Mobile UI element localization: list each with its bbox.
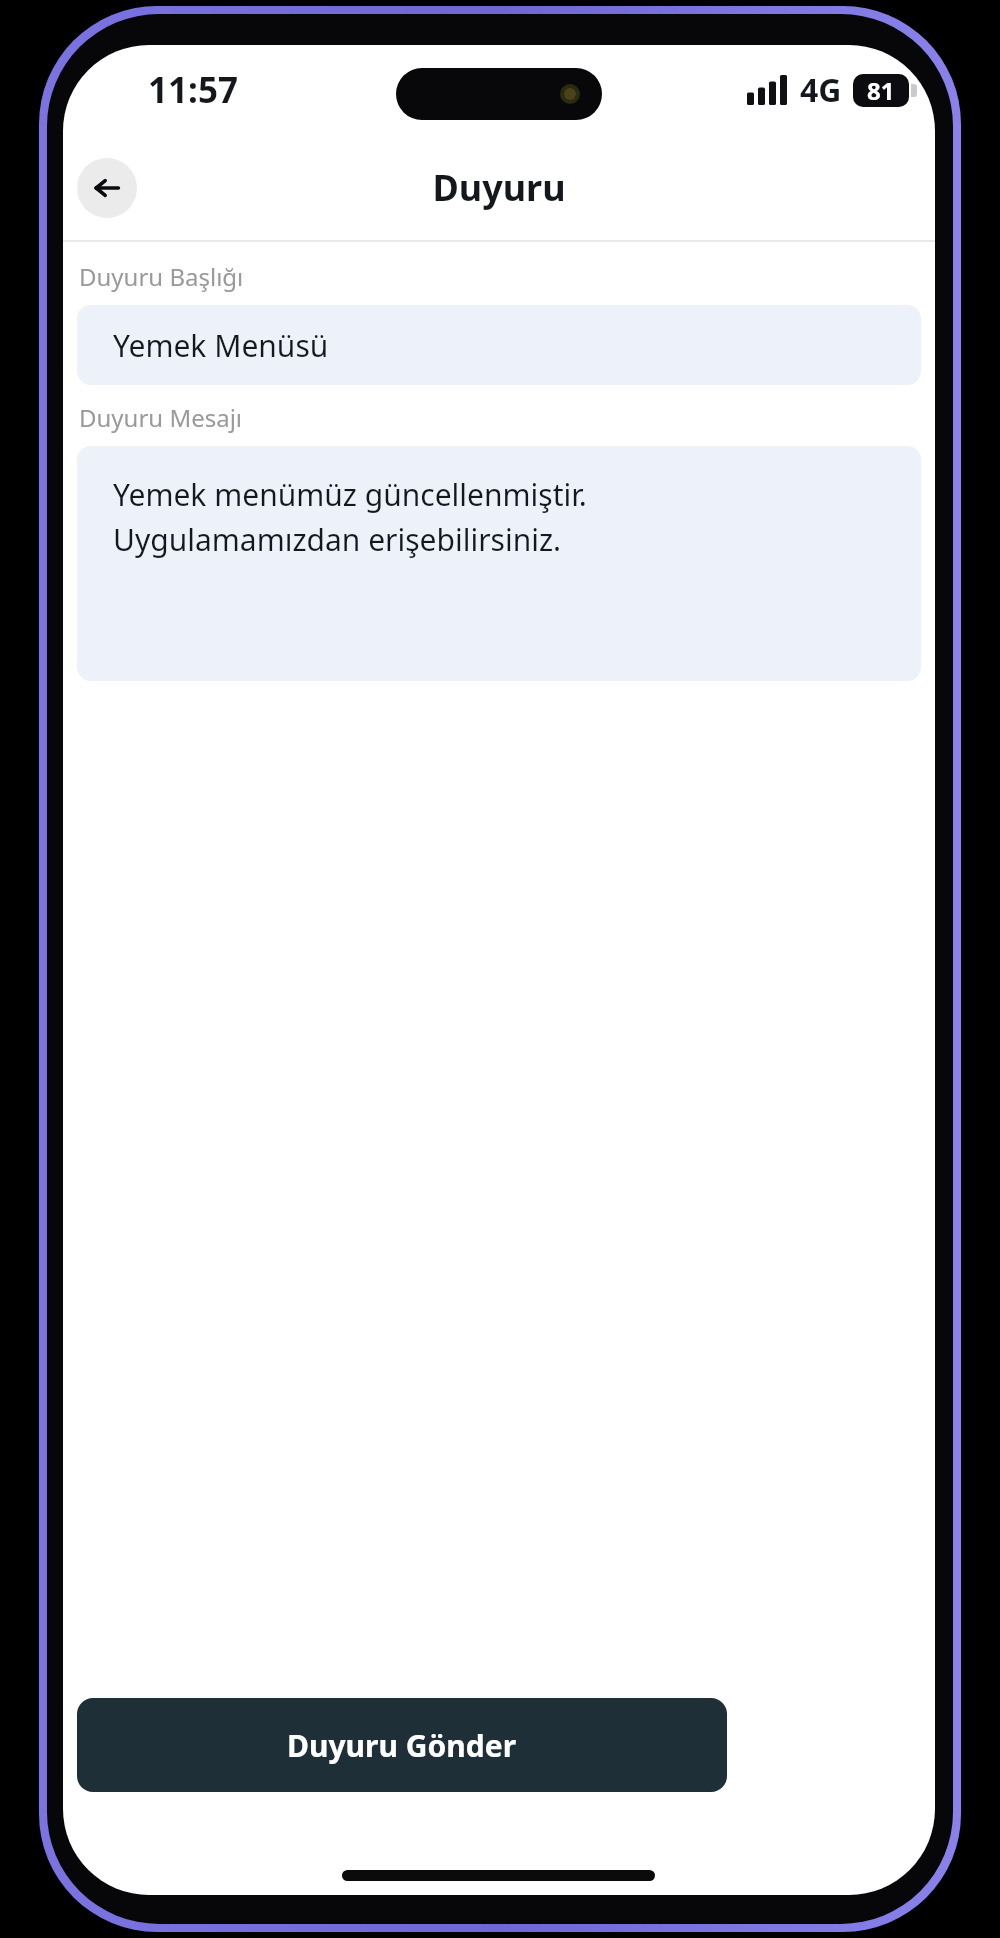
- staticText: Duyuru Başlığı: [79, 260, 244, 293]
- staticText: 4G: [800, 68, 842, 112]
- other: Signal strength: [747, 75, 789, 105]
- staticText: 11:57: [148, 66, 238, 114]
- staticText: Duyuru Gönder: [287, 1725, 517, 1766]
- staticText: 81: [867, 74, 895, 107]
- staticText: Yemek Menüsü: [113, 325, 329, 366]
- button[interactable]: Yemek menümüz güncellenmiştir. Uygulamam…: [77, 446, 921, 681]
- other: Battery 81 percent: [853, 74, 909, 107]
- staticText: Yemek menümüz güncellenmiştir. Uygulamam…: [113, 474, 587, 559]
- button[interactable]: Yemek Menüsü: [77, 305, 921, 385]
- staticText: Duyuru: [432, 163, 566, 212]
- staticText: Duyuru Mesajı: [79, 401, 243, 434]
- button[interactable]: Back: [77, 158, 137, 218]
- button[interactable]: Duyuru Gönder: [77, 1698, 727, 1792]
